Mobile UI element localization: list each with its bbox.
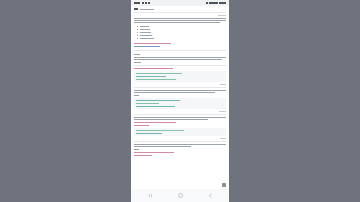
button[interactable]: Recent apps [139, 189, 161, 202]
button[interactable] [134, 8, 226, 10]
button[interactable]: Home [169, 189, 191, 202]
button[interactable]: Scroll to top [222, 183, 226, 187]
button[interactable]: Back [199, 189, 221, 202]
